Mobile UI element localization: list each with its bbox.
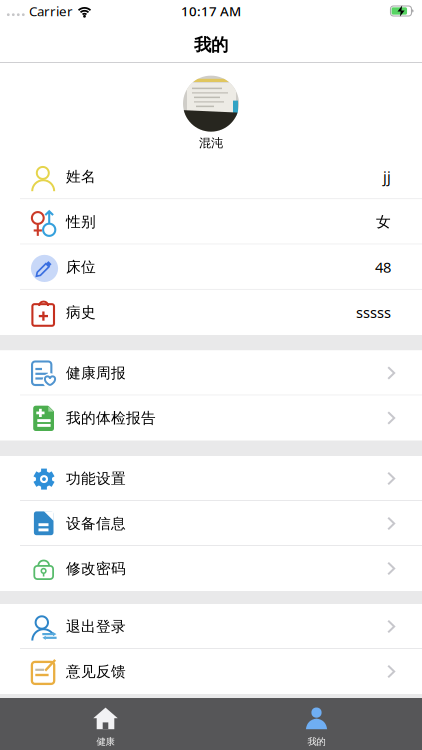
button[interactable]: 健康 (0, 698, 211, 750)
button[interactable]: 床位 (0, 244, 422, 290)
button[interactable]: 姓名 (0, 154, 422, 199)
staticText: sssss (356, 303, 391, 322)
staticText: jj (383, 167, 391, 186)
staticText: 我的 (194, 34, 228, 56)
staticText: 设备信息 (66, 514, 126, 532)
button[interactable]: 功能设置 (0, 456, 422, 501)
button[interactable]: 意见反馈 (0, 649, 422, 694)
staticText: 健康周报 (66, 364, 126, 382)
button[interactable]: 病史 (0, 290, 422, 335)
button[interactable]: 设备信息 (0, 501, 422, 546)
staticText: 姓名 (66, 168, 96, 186)
staticText: 病史 (66, 303, 96, 321)
button[interactable]: 我的体检报告 (0, 395, 422, 440)
staticText: 混沌 (199, 136, 223, 150)
staticText: 我的体检报告 (66, 409, 156, 427)
staticText: 意见反馈 (66, 662, 126, 680)
staticText: 功能设置 (66, 469, 126, 487)
staticText: 10:17 AM (181, 2, 241, 20)
staticText: Carrier (29, 2, 73, 20)
button[interactable]: 健康周报 (0, 350, 422, 395)
staticText: 修改密码 (66, 559, 126, 577)
staticText: 性别 (66, 213, 96, 231)
staticText: 我的 (307, 736, 325, 747)
button[interactable]: Profile photo (183, 76, 239, 132)
button[interactable]: 我的 (211, 698, 422, 750)
button[interactable]: 修改密码 (0, 546, 422, 591)
staticText: 48 (375, 257, 391, 277)
button[interactable]: 退出登录 (0, 604, 422, 649)
button[interactable]: 性别 (0, 199, 422, 244)
staticText: 女 (376, 213, 391, 231)
staticText: 退出登录 (66, 617, 126, 635)
staticText: 床位 (66, 258, 96, 276)
staticText: 健康 (96, 736, 114, 747)
